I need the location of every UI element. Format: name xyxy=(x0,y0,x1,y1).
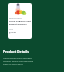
staticText: ORGANIC FRUIT xyxy=(9,17,22,19)
staticText: Hand picked from certified organic farms… xyxy=(3,57,37,66)
staticText: Fresh Organic Fruit Basket Delivery xyxy=(9,20,31,26)
button[interactable]: ORGANIC FRUIT xyxy=(8,3,32,39)
staticText: $12.40 xyxy=(9,31,16,34)
staticText: Price xyxy=(9,28,13,30)
staticText: Product Details xyxy=(3,49,29,54)
